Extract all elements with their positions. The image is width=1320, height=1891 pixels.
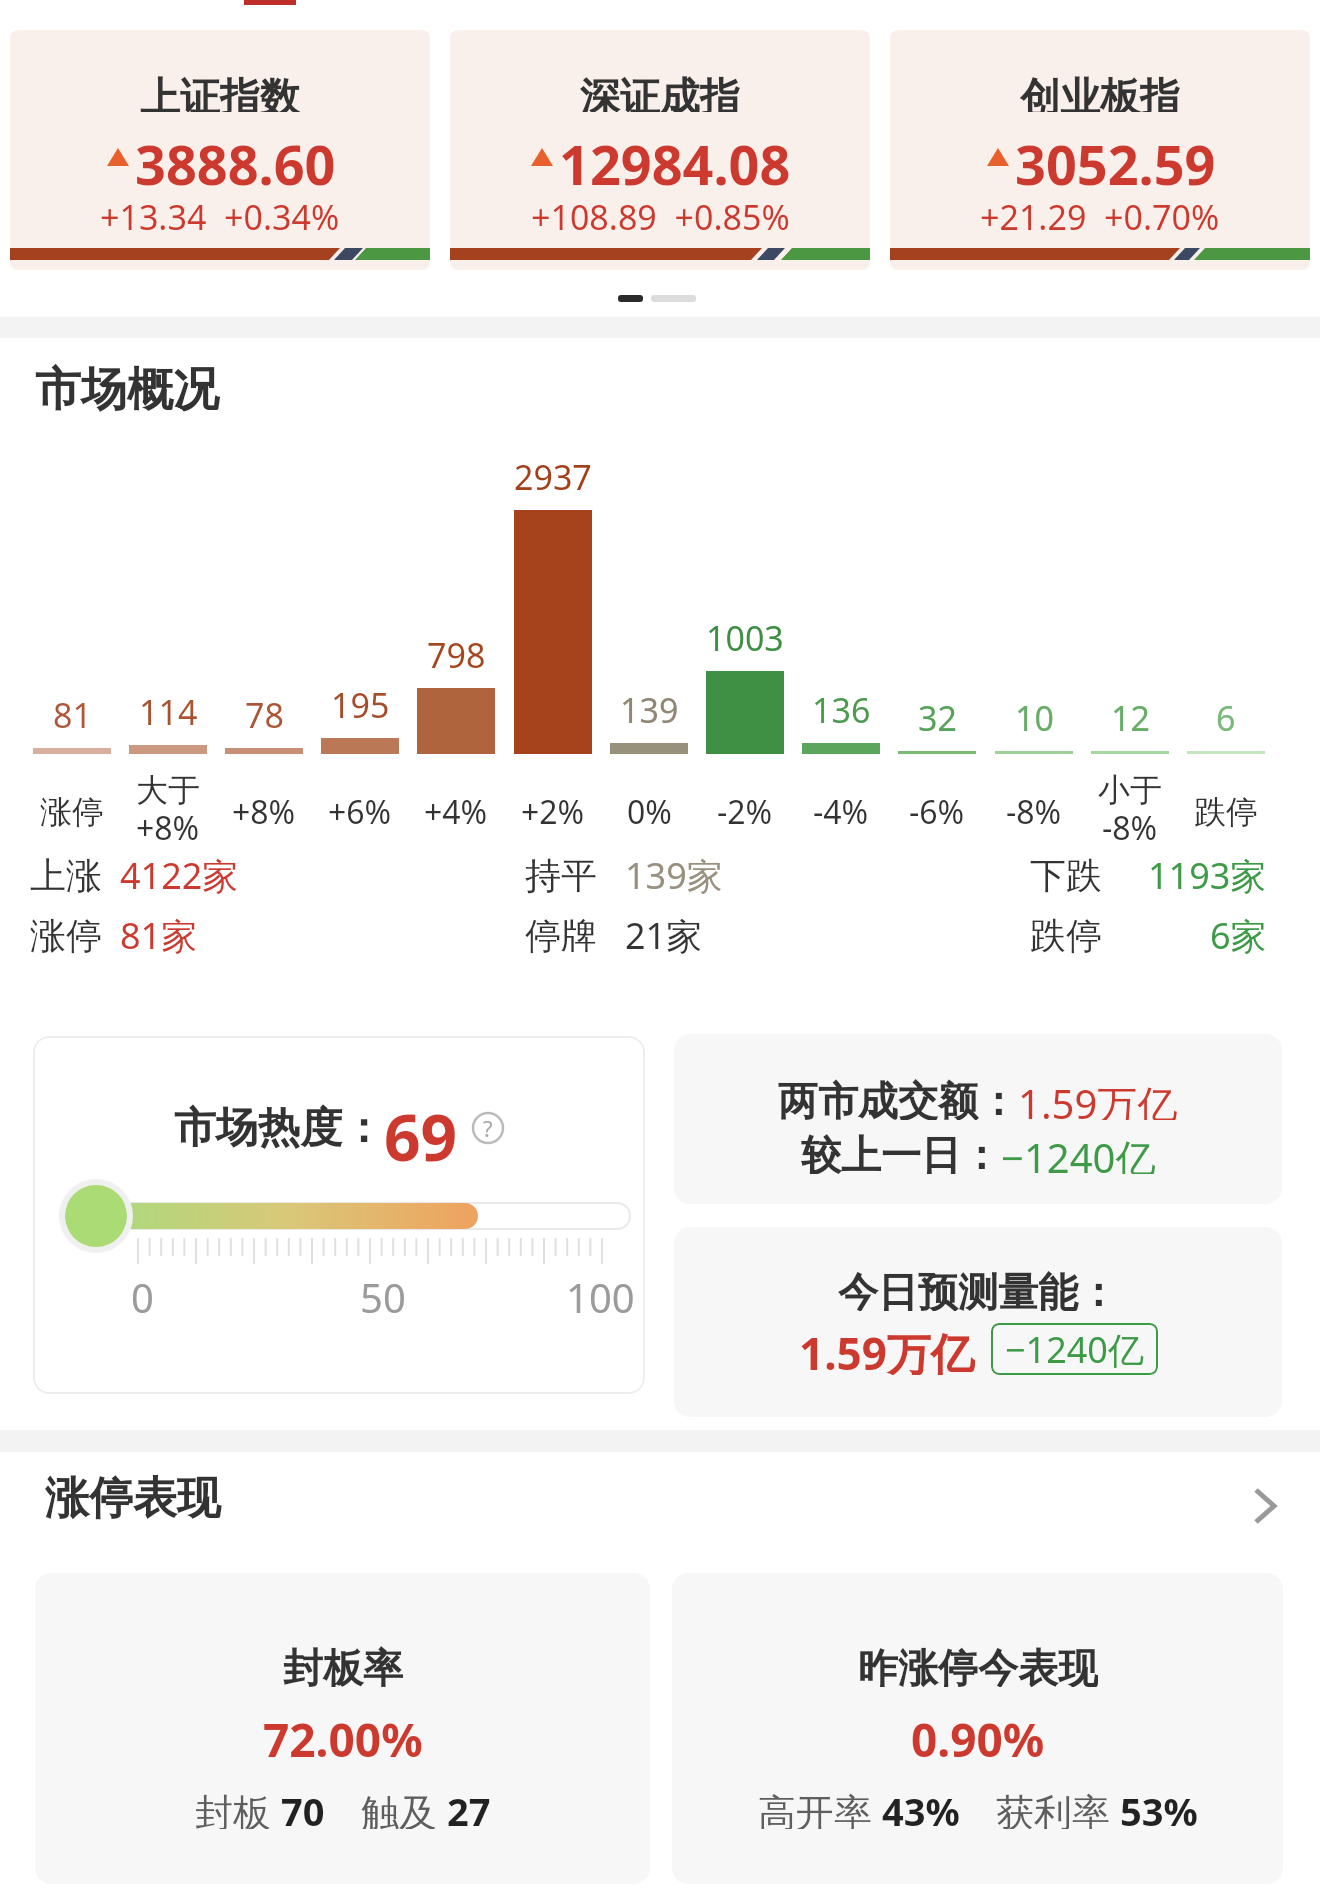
staticText: 139家 [625, 851, 723, 900]
staticText: -6% [909, 790, 965, 834]
staticText: 创业板指 [1020, 72, 1180, 112]
staticText: −1240亿 [1005, 1325, 1144, 1373]
staticText: 81 [53, 692, 92, 738]
staticText: 1003 [706, 615, 784, 661]
staticText: 195 [331, 682, 390, 728]
staticText: 涨停表现 [45, 1471, 221, 1526]
staticText: 6 [1216, 695, 1236, 741]
staticText: 涨停 [30, 913, 102, 958]
staticText: 78 [245, 692, 284, 738]
staticText: +21.29 +0.70% [980, 194, 1220, 234]
staticText: 139 [620, 687, 679, 733]
staticText: 0 [131, 1270, 154, 1324]
staticText: +2% [521, 790, 585, 834]
staticText: 今日预测量能： [838, 1267, 1118, 1311]
staticText: 4122家 [120, 851, 239, 900]
button[interactable]: 昨涨停今表现 [672, 1573, 1283, 1884]
staticText: 封板 [195, 1785, 281, 1829]
staticText: 12 [1111, 695, 1150, 741]
staticText: 1193家 [1148, 851, 1267, 900]
button[interactable]: 两市成交额： [674, 1034, 1282, 1204]
staticText: 3888.60 [135, 127, 336, 187]
button[interactable]: 上证指数 [10, 30, 430, 270]
staticText: 深证成指 [580, 72, 740, 112]
staticText: 获利率 [996, 1785, 1120, 1829]
staticText: 1.59万亿 [1018, 1076, 1178, 1120]
staticText: 27 [447, 1785, 491, 1829]
staticText: 跌停 [1030, 913, 1102, 958]
staticText: 100 [566, 1270, 635, 1324]
staticText: 封板率 [283, 1643, 403, 1687]
staticText: 21家 [625, 911, 703, 960]
button[interactable]: 市场热度： [33, 1036, 645, 1394]
staticText: +13.34 +0.34% [100, 194, 340, 234]
button[interactable]: 创业板指 [890, 30, 1310, 270]
staticText: -4% [813, 790, 869, 834]
staticText: +6% [328, 790, 392, 834]
button[interactable]: 今日预测量能： [674, 1227, 1282, 1417]
staticText: 3052.59 [1015, 127, 1216, 187]
staticText: 53% [1120, 1785, 1198, 1829]
staticText: 1.59万亿 [799, 1323, 975, 1375]
staticText: 停牌 [525, 913, 597, 958]
staticText: 昨涨停今表现 [858, 1643, 1098, 1687]
staticText: 涨停 [40, 792, 104, 832]
staticText: 上涨 [30, 853, 102, 898]
staticText: 触及 [361, 1785, 447, 1829]
staticText: ? [483, 1113, 493, 1143]
staticText: 136 [812, 687, 871, 733]
button[interactable]: 深证成指 [450, 30, 870, 270]
staticText: 114 [139, 689, 198, 735]
staticText: 0% [627, 790, 672, 834]
staticText: +8% [136, 806, 200, 850]
staticText: 大于 [136, 770, 200, 810]
staticText: -8% [1102, 806, 1158, 850]
staticText: 69 [384, 1093, 458, 1163]
staticText: 市场概况 [35, 361, 219, 419]
staticText: 43% [882, 1785, 960, 1829]
staticText: 市场热度： [174, 1102, 384, 1155]
staticText: 小于 [1098, 770, 1162, 810]
staticText: 50 [360, 1270, 406, 1324]
staticText: 下跌 [1030, 853, 1102, 898]
staticText: 较上一日： [801, 1130, 1001, 1174]
staticText: 2937 [514, 454, 592, 500]
button[interactable]: 封板率 [35, 1573, 650, 1884]
staticText: -2% [717, 790, 773, 834]
staticText: 持平 [525, 853, 597, 898]
staticText: +8% [232, 790, 296, 834]
staticText: 两市成交额： [778, 1076, 1018, 1120]
staticText: +4% [424, 790, 488, 834]
staticText: +108.89 +0.85% [531, 194, 790, 234]
staticText: 70 [281, 1785, 325, 1829]
staticText: 高开率 [758, 1785, 882, 1829]
staticText: 81家 [120, 911, 198, 960]
staticText: 72.00% [263, 1708, 423, 1758]
staticText: 12984.08 [559, 127, 791, 187]
staticText: 跌停 [1194, 792, 1258, 832]
button[interactable]: 涨停表现 [0, 1470, 1320, 1542]
staticText: 32 [918, 695, 957, 741]
staticText: 10 [1015, 695, 1054, 741]
staticText: −1240亿 [1001, 1130, 1156, 1174]
staticText: 0.90% [911, 1708, 1045, 1758]
staticText: -8% [1006, 790, 1062, 834]
staticText: 上证指数 [140, 72, 300, 112]
staticText: 6家 [1210, 911, 1267, 960]
staticText: 798 [427, 632, 486, 678]
